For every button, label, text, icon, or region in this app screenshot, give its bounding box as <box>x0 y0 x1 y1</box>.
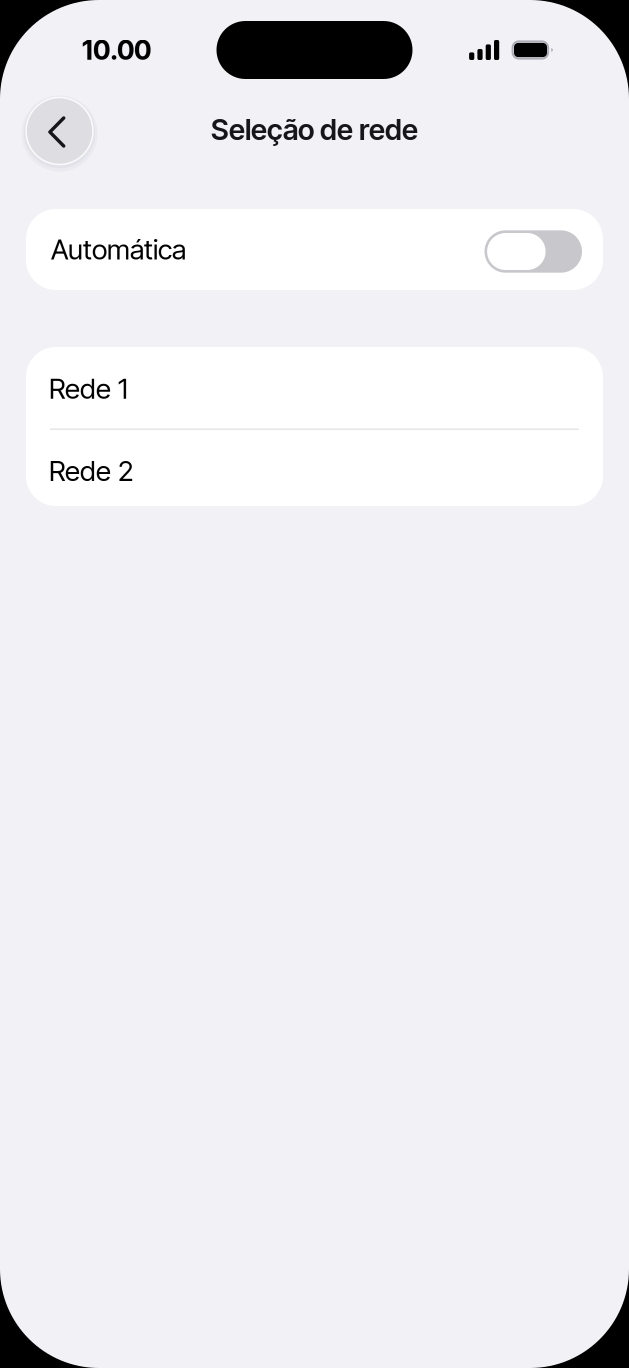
button[interactable]: Back <box>21 93 97 169</box>
button[interactable]: Rede 2 <box>26 430 603 506</box>
button[interactable]: Rede 1 <box>26 347 603 428</box>
staticText: 10.00 <box>82 34 151 66</box>
staticText: Seleção de rede <box>211 112 418 147</box>
staticText: Rede 1 <box>49 372 128 406</box>
staticText: Automática <box>51 233 186 266</box>
button[interactable]: Automática <box>26 209 603 290</box>
staticText: Rede 2 <box>49 454 133 488</box>
